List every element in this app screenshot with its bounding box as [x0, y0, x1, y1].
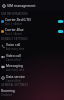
staticText: Messaging	[6, 63, 23, 67]
staticText: Ask every time	[6, 68, 25, 72]
button[interactable]: Toggle	[58, 20, 63, 23]
button[interactable]: Voice call	[0, 41, 64, 51]
staticText: Roaming	[1, 88, 15, 92]
staticText: Slot 1 • Active	[5, 22, 22, 26]
staticText: Disabled	[1, 93, 12, 97]
staticText: Carrier-Red (LTE)	[5, 17, 31, 21]
staticText: Slot 2 • Active	[5, 32, 22, 36]
staticText: Data service	[6, 74, 25, 78]
button[interactable]: Settings	[1, 3, 7, 9]
staticText: Carrier-Blue	[5, 27, 24, 31]
staticText: GENERAL SETTINGS	[1, 83, 29, 87]
button[interactable]: Toggle	[58, 30, 63, 33]
staticText: Video call	[6, 53, 21, 57]
button[interactable]: Carrier-Blue	[0, 26, 64, 36]
staticText: Carrier-Red	[6, 58, 21, 62]
button[interactable]: Carrier-Red (LTE)	[0, 16, 64, 26]
staticText: SIM management	[7, 3, 36, 8]
button[interactable]: Video call	[0, 52, 64, 62]
button[interactable]: Roaming	[0, 87, 64, 97]
staticText: Carrier-Red	[6, 79, 21, 83]
button[interactable]: Data service	[0, 73, 64, 83]
staticText: DEFAULT SETTINGS	[1, 37, 28, 41]
staticText: Ask every time	[6, 47, 25, 51]
staticText: Voice call	[6, 42, 21, 46]
button[interactable]: Messaging	[0, 62, 64, 72]
staticText: SIM INFORMATION	[1, 12, 28, 16]
